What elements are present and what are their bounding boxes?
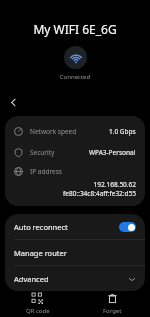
button[interactable]: Advanced [5,266,145,291]
staticText: IP address [30,167,62,176]
staticText: Network speed [30,127,77,136]
button[interactable]: QR code [0,291,75,317]
staticText: Forget [103,307,122,315]
button[interactable]: Security [5,142,145,163]
button[interactable]: Manage router [5,240,145,265]
staticText: Advanced [14,274,49,284]
staticText: Security [30,148,55,157]
staticText: Auto reconnect [14,222,68,232]
button[interactable]: Auto reconnect [5,214,145,239]
staticText: 192.168.50.62 [14,180,136,189]
staticText: Connected [0,73,150,81]
staticText: Manage router [14,248,67,258]
button[interactable]: Back [5,94,22,111]
button[interactable]: Network speed [5,121,145,142]
button[interactable]: IP address [5,163,145,203]
staticText: WPA3-Personal [89,148,136,157]
staticText: My WIFI 6E_6G [0,21,150,37]
staticText: QR code [26,307,50,315]
staticText: 1.0 Gbps [109,127,136,136]
button[interactable]: Forget [75,291,150,317]
staticText: fe80::34c8:4aff:fe32:d55 [14,189,136,198]
